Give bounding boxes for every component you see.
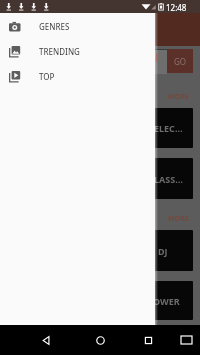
button[interactable]: Back: [41, 335, 52, 346]
button[interactable]: TRENDING: [0, 39, 155, 64]
staticText: TOP: [39, 71, 55, 82]
staticText: TRENDING: [39, 46, 80, 57]
button[interactable]: [6, 49, 167, 74]
button[interactable]: OWER: [6, 281, 193, 320]
button[interactable]: TOP: [0, 64, 155, 89]
button[interactable]: Recent apps: [143, 335, 154, 346]
staticText: MORE: [168, 214, 189, 222]
staticText: GO: [174, 56, 187, 67]
staticText: MORE: [168, 92, 189, 100]
button[interactable]: DJ: [6, 230, 193, 271]
staticText: 12:48: [166, 2, 187, 13]
button[interactable]: ELEC…: [6, 108, 193, 148]
button[interactable]: MORE: [168, 214, 190, 222]
staticText: LASS…: [154, 173, 183, 185]
button[interactable]: GENRES: [0, 14, 155, 39]
button[interactable]: Home: [95, 335, 106, 346]
button[interactable]: MORE: [168, 92, 190, 100]
staticText: GENRES: [39, 21, 70, 32]
button[interactable]: GO: [167, 49, 193, 73]
button[interactable]: LASS…: [6, 158, 193, 199]
staticText: OWER: [153, 295, 180, 307]
staticText: DJ: [158, 245, 168, 257]
staticText: ELEC…: [154, 122, 183, 134]
button[interactable]: Keyboard: [181, 336, 192, 344]
